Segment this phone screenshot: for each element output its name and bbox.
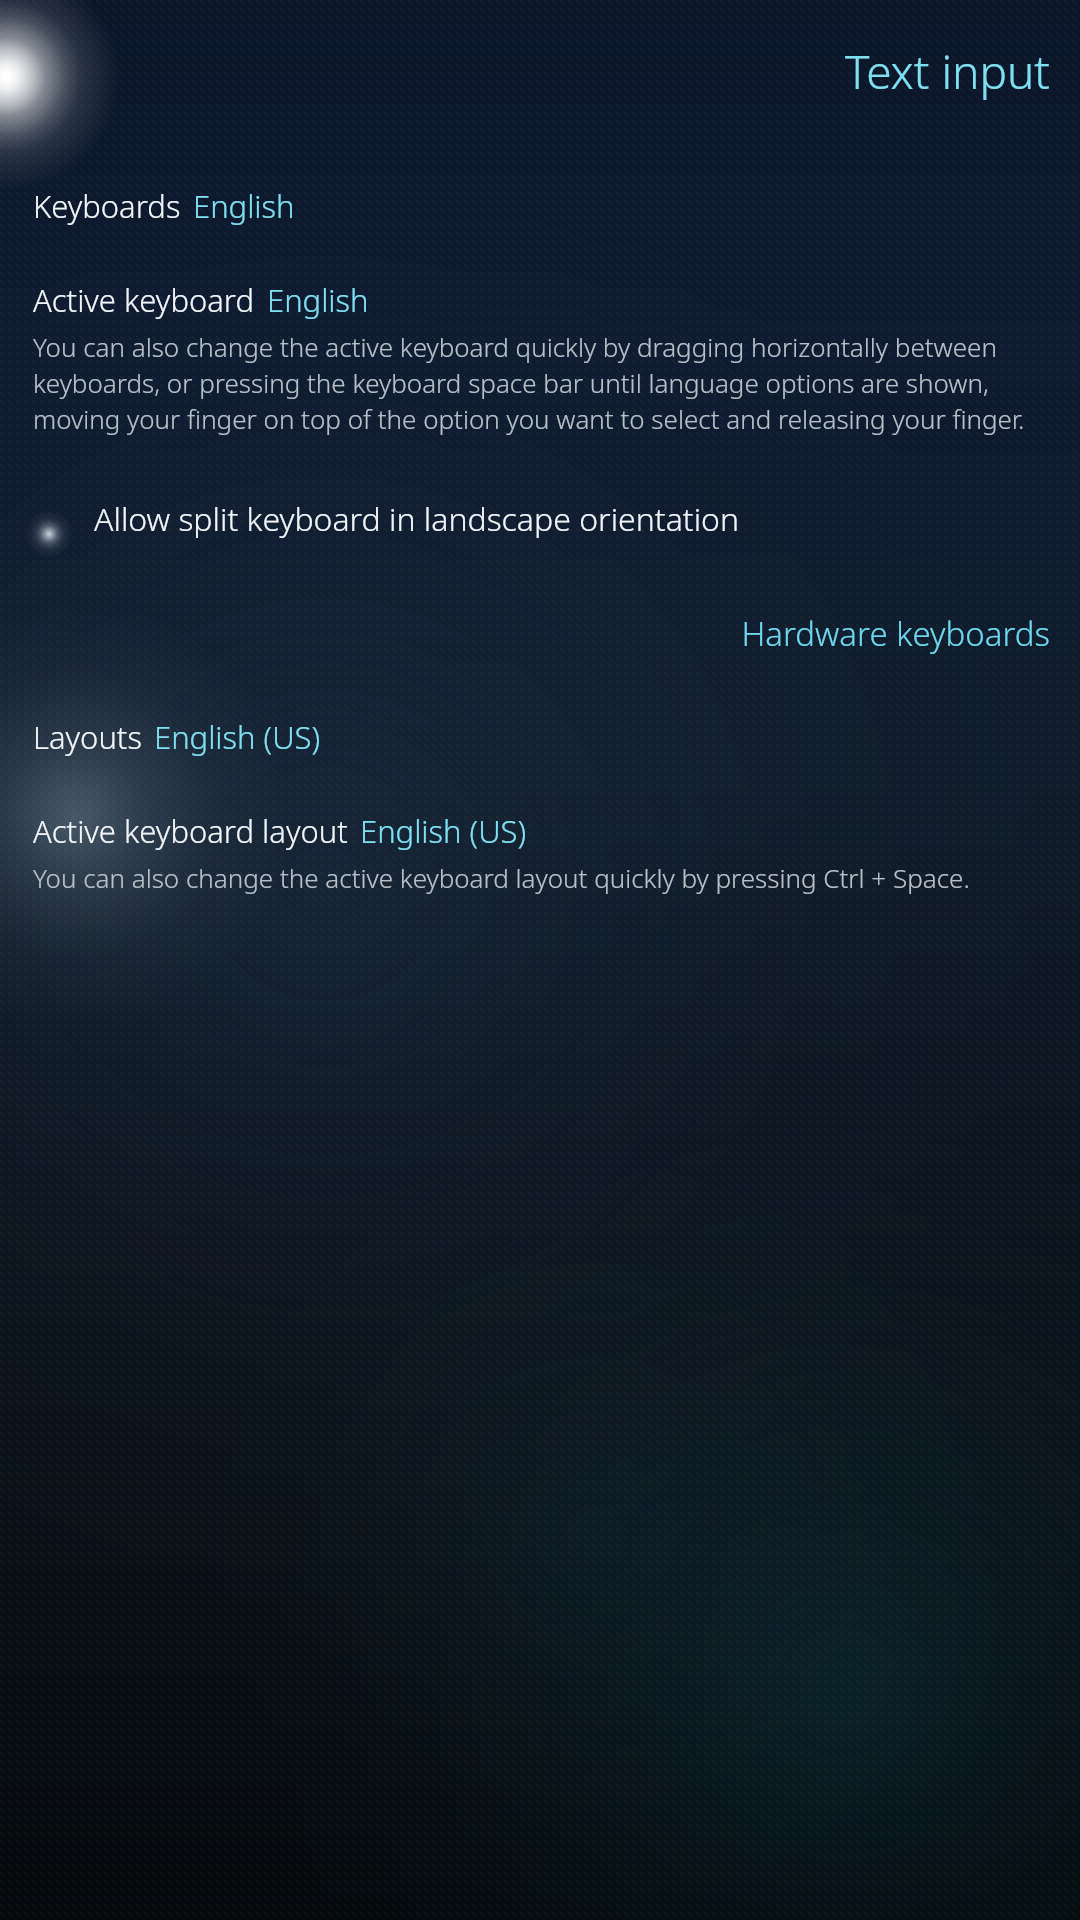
staticText: Text input (844, 40, 1050, 103)
staticText: Active keyboard layout (33, 810, 348, 852)
staticText: Hardware keyboards (741, 611, 1050, 656)
button[interactable]: Allow split keyboard checkbox (0, 491, 1080, 563)
button[interactable]: Active keyboard layout (0, 810, 1080, 852)
staticText: You can also change the active keyboard … (33, 860, 1050, 895)
other: Allow split keyboard checkbox (26, 511, 72, 557)
staticText: You can also change the active keyboard … (33, 329, 1050, 437)
staticText: Keyboards (33, 185, 181, 227)
staticText: Layouts (33, 716, 142, 758)
staticText: English (US) (154, 716, 321, 758)
staticText: Active keyboard (33, 279, 255, 321)
staticText: English (193, 185, 295, 227)
button[interactable]: Active keyboard (0, 279, 1080, 321)
button[interactable]: Keyboards (0, 185, 1080, 227)
staticText: English (US) (360, 810, 527, 852)
staticText: English (267, 279, 369, 321)
staticText: Allow split keyboard in landscape orient… (94, 497, 740, 541)
button[interactable]: Layouts (0, 716, 1080, 758)
